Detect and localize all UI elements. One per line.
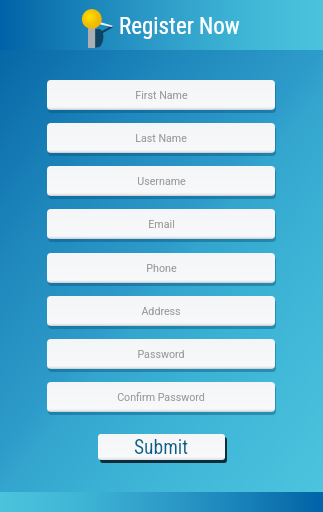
staticText: Phone — [146, 262, 177, 275]
button[interactable]: Username — [47, 166, 275, 196]
button[interactable]: Email — [47, 209, 275, 239]
button[interactable]: Phone — [47, 253, 275, 283]
staticText: Register Now — [119, 13, 240, 40]
button[interactable]: Confirm Password — [47, 382, 275, 412]
staticText: First Name — [135, 89, 188, 102]
staticText: Confirm Password — [117, 391, 205, 404]
staticText: Email — [148, 218, 175, 231]
staticText: Address — [141, 305, 181, 318]
staticText: Last Name — [135, 132, 187, 145]
button[interactable]: Address — [47, 296, 275, 326]
button[interactable]: First Name — [47, 80, 275, 110]
staticText: Password — [137, 348, 185, 361]
button[interactable]: Password — [47, 339, 275, 369]
staticText: Username — [137, 175, 186, 188]
button[interactable]: Submit — [98, 434, 225, 460]
staticText: Submit — [134, 436, 189, 459]
button[interactable]: Last Name — [47, 123, 275, 153]
